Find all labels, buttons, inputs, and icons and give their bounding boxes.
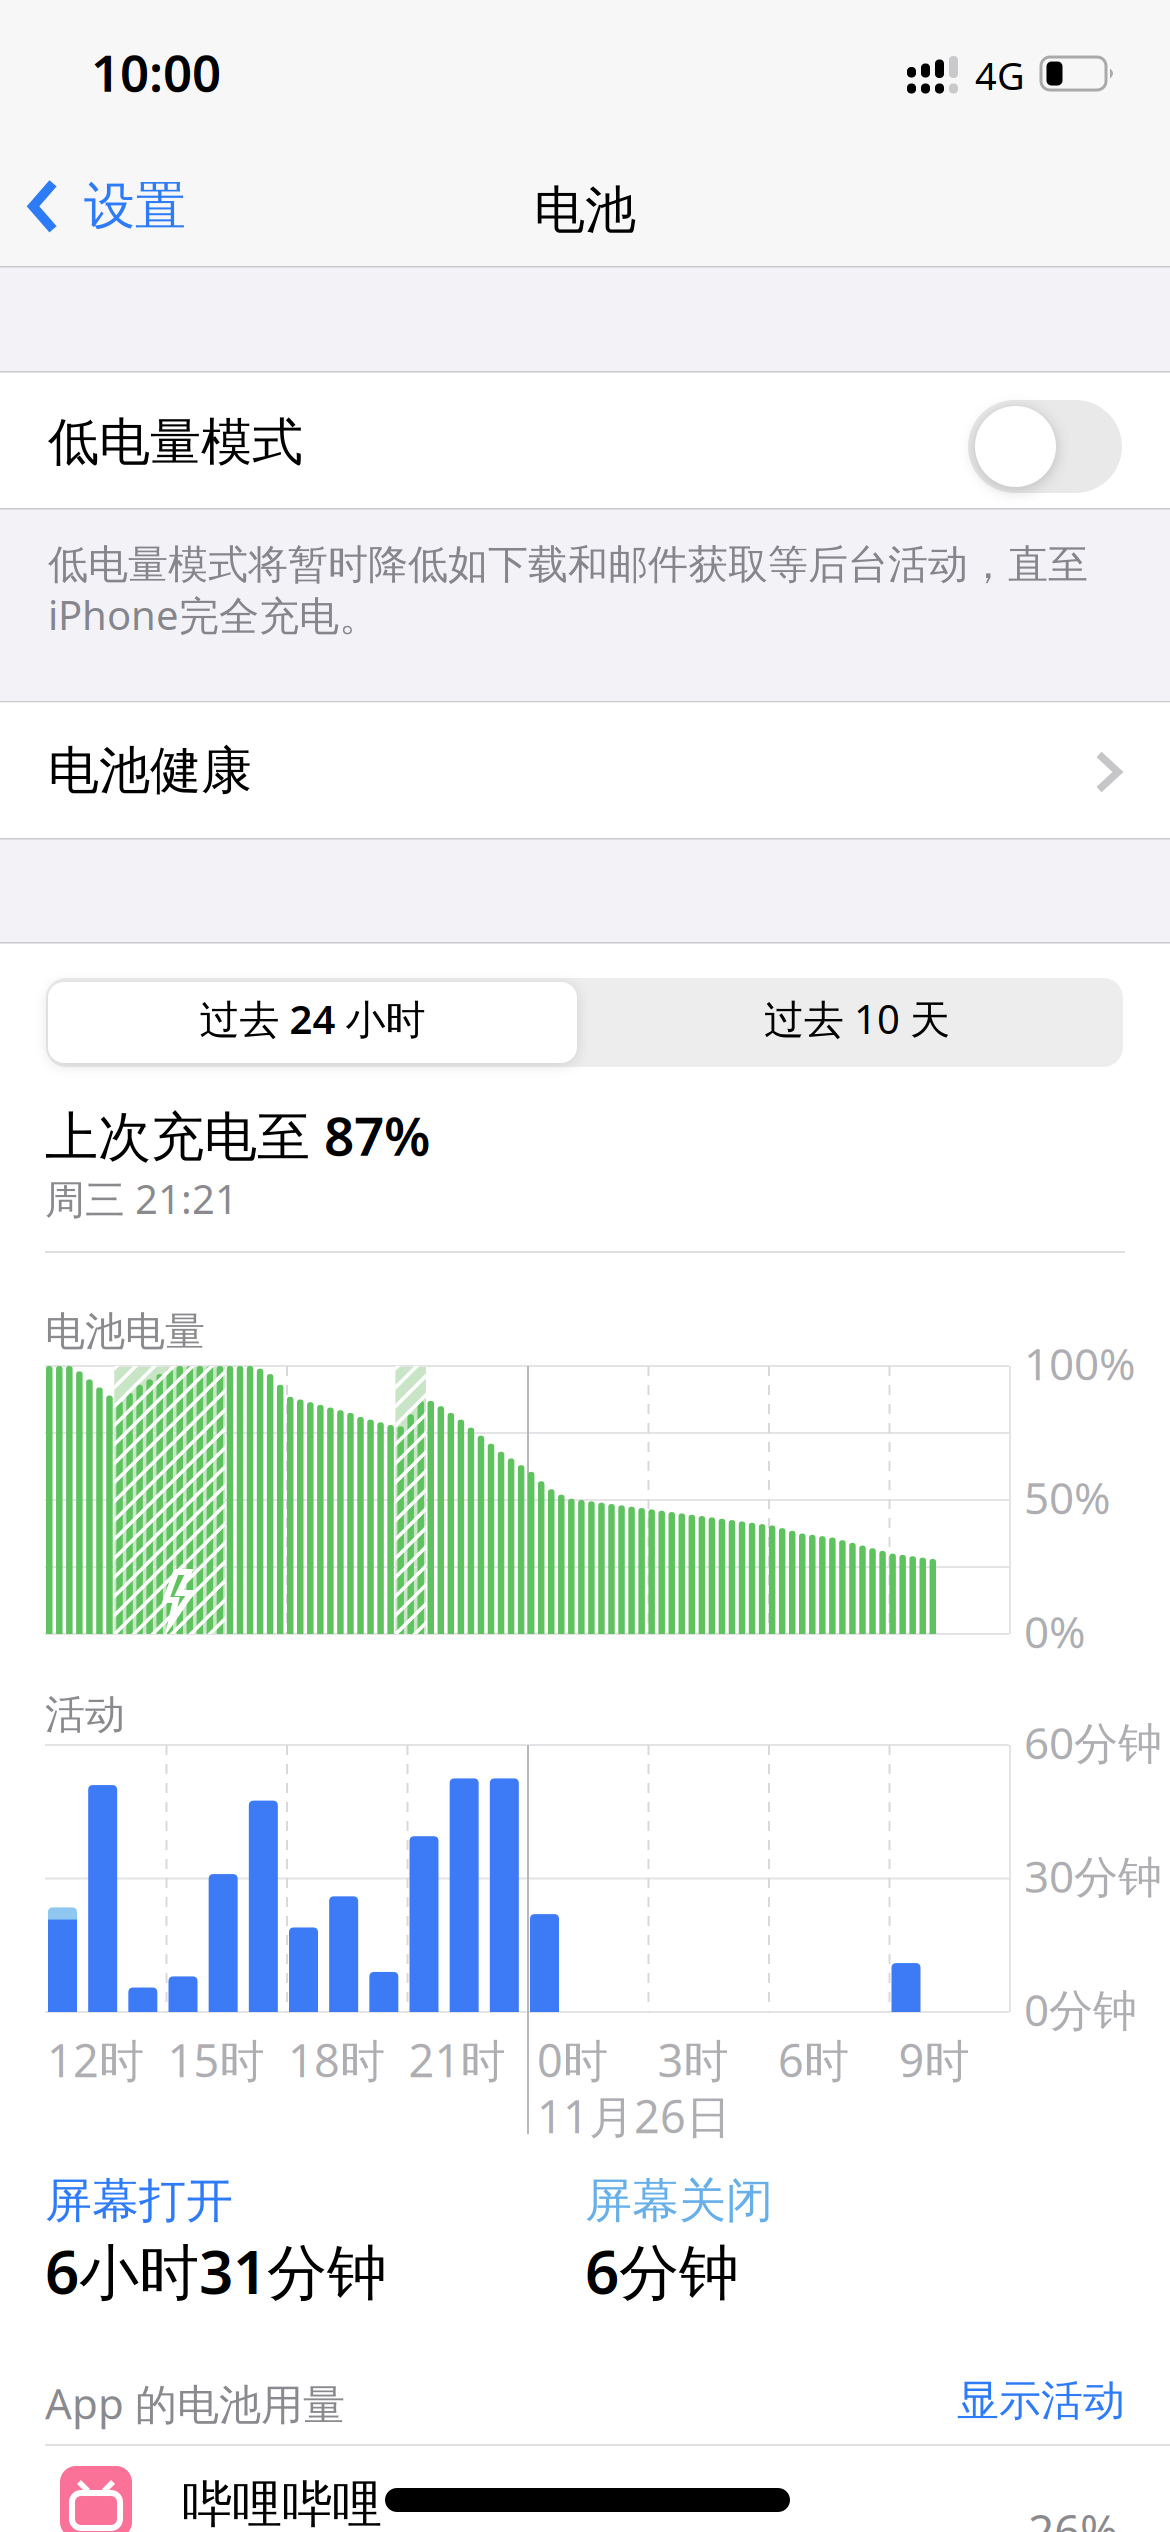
staticText: 21时 xyxy=(408,2030,505,2090)
staticText: 6时 xyxy=(778,2030,849,2090)
button[interactable]: 电池健康 xyxy=(0,702,1170,835)
staticText: 6小时31分钟 xyxy=(45,2231,387,2311)
staticText: 低电量模式 xyxy=(48,411,303,474)
staticText: App 的电池用量 xyxy=(45,2375,345,2431)
staticText: 设置 xyxy=(84,175,186,238)
staticText: 哔哩哔哩 xyxy=(182,2474,382,2532)
staticText: 100% xyxy=(1024,1334,1136,1392)
staticText: 电池电量 xyxy=(45,1307,205,1356)
staticText: 0% xyxy=(1024,1602,1086,1660)
staticText: 26% xyxy=(1028,2500,1118,2532)
staticText: 11月26日 xyxy=(537,2086,731,2146)
staticText: 周三 21:21 xyxy=(45,1172,238,1225)
staticText: 电池 xyxy=(534,179,636,242)
staticText: 过去 10 天 xyxy=(764,992,950,1045)
staticText: 30分钟 xyxy=(1024,1846,1162,1905)
staticText: 15时 xyxy=(167,2030,264,2090)
staticText: iPhone完全充电。 xyxy=(48,588,379,641)
staticText: 18时 xyxy=(288,2030,385,2090)
button[interactable]: 过去 24 小时 xyxy=(48,982,577,1063)
staticText: 3时 xyxy=(657,2030,728,2090)
staticText: 显示活动 xyxy=(957,2375,1125,2427)
staticText: 上次充电至 87% xyxy=(45,1100,430,1170)
button[interactable]: 过去 10 天 xyxy=(595,992,1119,1045)
staticText: 低电量模式将暂时降低如下载和邮件获取等后台活动，直至 xyxy=(48,540,1088,589)
staticText: 10:00 xyxy=(91,38,221,106)
staticText: 屏幕打开 xyxy=(45,2172,233,2230)
staticText: 60分钟 xyxy=(1024,1713,1162,1771)
button[interactable]: 显示活动 xyxy=(957,2375,1125,2427)
button[interactable]: 哔哩哔哩 xyxy=(0,2460,1170,2532)
button[interactable]: 返回设置 xyxy=(28,175,186,238)
staticText: 9时 xyxy=(898,2030,969,2090)
staticText: 过去 24 小时 xyxy=(199,992,425,1045)
staticText: 4G xyxy=(975,50,1025,100)
staticText: 电池健康 xyxy=(48,739,252,802)
staticText: 6分钟 xyxy=(585,2231,739,2311)
staticText: 活动 xyxy=(45,1690,125,1739)
staticText: 12时 xyxy=(47,2030,144,2090)
button[interactable]: 低电量模式 xyxy=(968,400,1122,493)
staticText: 0时 xyxy=(537,2030,608,2090)
staticText: 0分钟 xyxy=(1024,1980,1137,2038)
staticText: 50% xyxy=(1024,1468,1111,1526)
staticText: 屏幕关闭 xyxy=(585,2172,773,2230)
